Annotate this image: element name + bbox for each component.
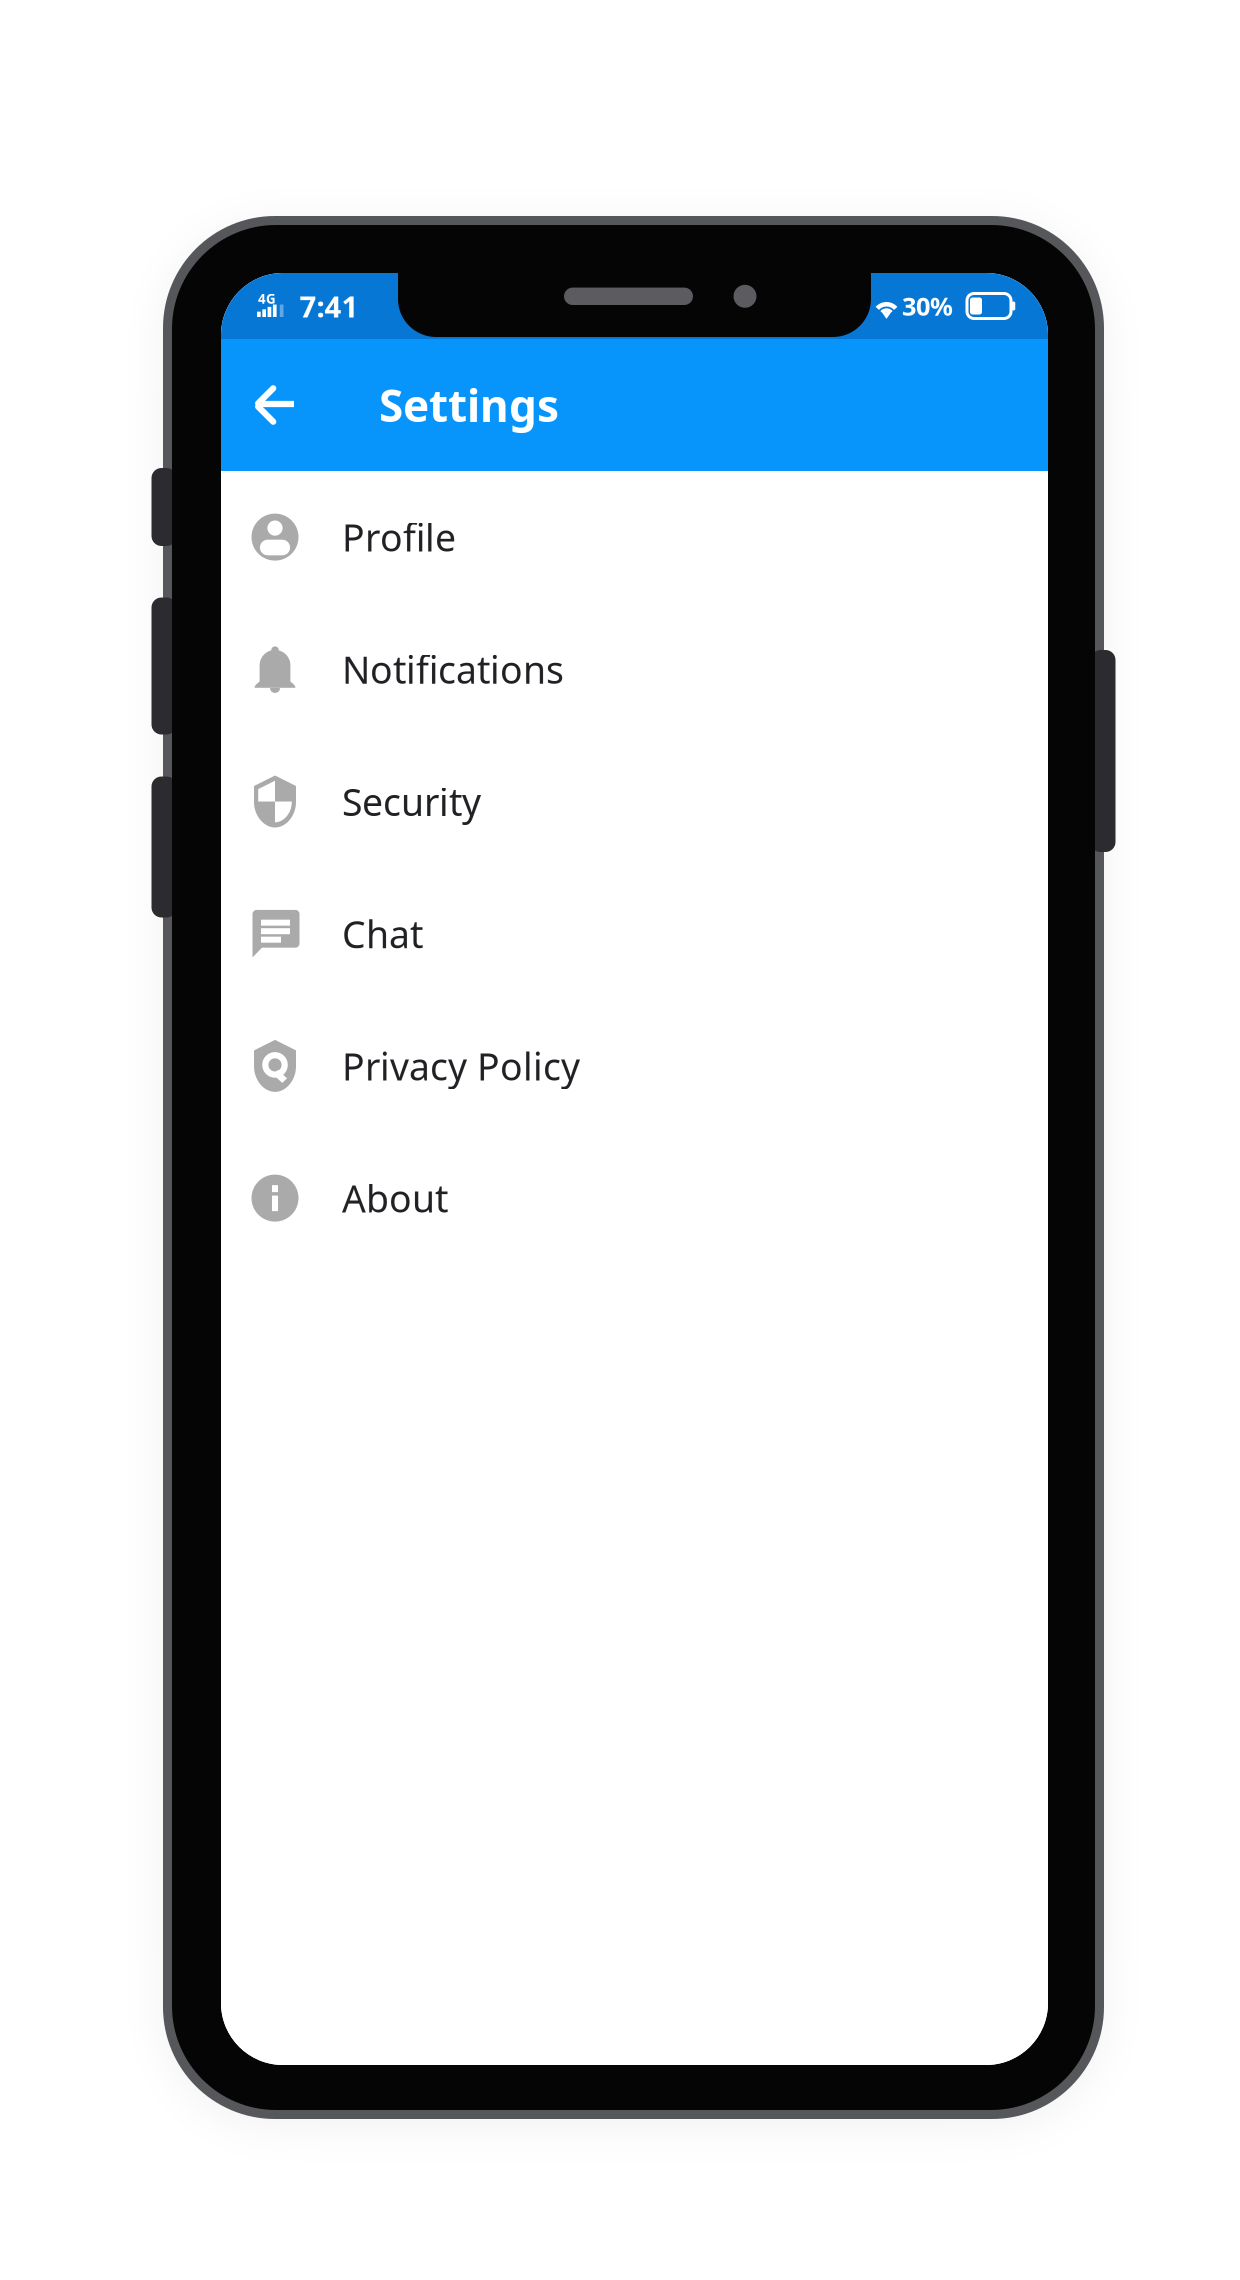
button[interactable]: Privacy Policy (221, 1000, 1048, 1132)
staticText: Privacy Policy (342, 1041, 580, 1091)
button[interactable]: Back (247, 339, 305, 471)
staticText: 7:41 (299, 286, 358, 325)
button[interactable]: Chat (221, 868, 1048, 1000)
staticText: Profile (342, 512, 456, 562)
staticText: Chat (342, 909, 423, 958)
button[interactable]: Security (221, 735, 1048, 868)
staticText: 30% (902, 289, 953, 323)
staticText: Settings (379, 376, 559, 434)
staticText: Security (342, 777, 481, 826)
staticText: Notifications (342, 644, 564, 694)
staticText: About (342, 1173, 448, 1223)
button[interactable]: About (221, 1132, 1048, 1264)
button[interactable]: Notifications (221, 603, 1048, 735)
staticText: 4G (258, 290, 276, 307)
button[interactable]: Profile (221, 471, 1048, 603)
